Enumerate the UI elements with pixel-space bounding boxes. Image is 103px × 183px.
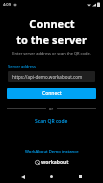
staticText: Scan QR code: [35, 118, 68, 125]
staticText: WorkAbout Demo instance: [25, 149, 79, 155]
staticText: to the server: [16, 32, 87, 47]
button[interactable]: Back: [16, 170, 29, 183]
button[interactable]: Connect: [7, 88, 96, 99]
button[interactable]: Scan QR code: [31, 117, 72, 126]
button[interactable]: Recent apps: [74, 170, 87, 183]
button[interactable]: WorkAbout Demo instance: [23, 147, 81, 157]
staticText: Enter server address or scan the QR code…: [12, 51, 91, 56]
staticText: https://api-demo.workabout.com: [12, 74, 83, 80]
staticText: Connect: [42, 90, 62, 97]
staticText: or: [49, 106, 54, 111]
button[interactable]: Home: [45, 170, 58, 183]
staticText: Connect: [29, 16, 75, 31]
staticText: workabout: [41, 159, 69, 166]
staticText: Server address: [8, 64, 36, 69]
staticText: 4:09: [3, 2, 11, 7]
button[interactable]: https://api-demo.workabout.com: [8, 71, 95, 82]
